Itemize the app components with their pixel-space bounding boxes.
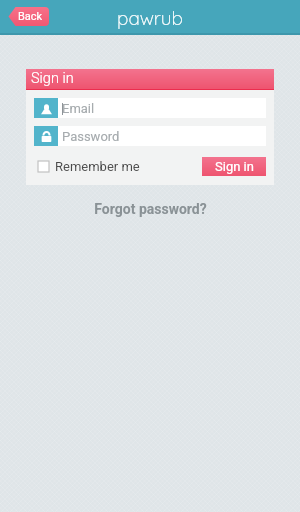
staticText: Password [62, 129, 120, 144]
button[interactable]: Password [34, 126, 266, 146]
staticText: Sign in [31, 70, 74, 87]
staticText: Forgot password? [94, 201, 207, 217]
staticText: Back [18, 10, 43, 23]
staticText: pawrub [117, 6, 183, 30]
button[interactable]: Sign in [202, 157, 266, 176]
staticText: Remember me [55, 159, 140, 174]
staticText: Email [62, 101, 95, 116]
button[interactable]: Forgot password? [88, 199, 213, 219]
button[interactable]: Email [34, 98, 266, 118]
staticText: Sign in [215, 159, 254, 174]
button[interactable]: Remember me [38, 159, 140, 174]
button[interactable]: Back [8, 7, 49, 26]
